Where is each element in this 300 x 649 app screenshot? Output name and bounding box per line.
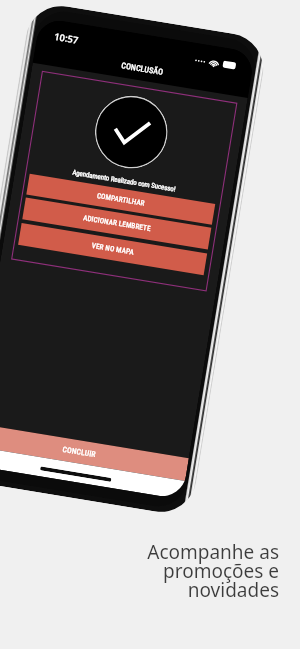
staticText: 10:57	[53, 30, 80, 47]
button[interactable]: VER NO MAPA	[18, 223, 207, 275]
staticText: Agendamento Realizado com Sucesso!	[72, 169, 177, 194]
staticText: COMPARTILHAR	[96, 192, 146, 208]
staticText: CONCLUSÃO	[121, 61, 165, 77]
button[interactable]: CONCLUIR	[0, 423, 189, 481]
staticText: ADICIONAR LEMBRETE	[83, 214, 152, 233]
staticText: Acompanhe as promoções e novidades	[147, 539, 279, 602]
button[interactable]: COMPARTILHAR	[26, 174, 215, 225]
staticText: CONCLUIR	[62, 445, 97, 459]
button[interactable]: ADICIONAR LEMBRETE	[22, 197, 211, 249]
staticText: VER NO MAPA	[91, 242, 135, 257]
